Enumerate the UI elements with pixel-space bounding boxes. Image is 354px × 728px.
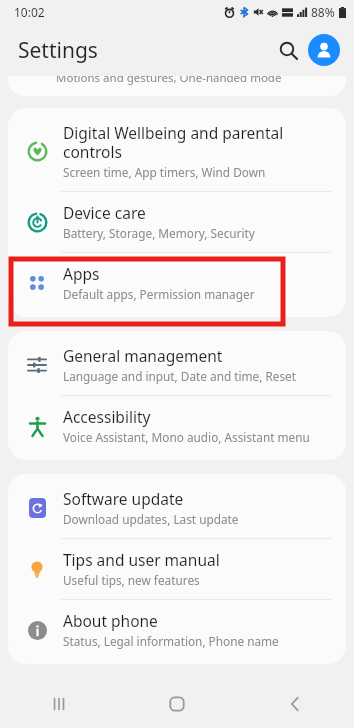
staticText: 10:02 [14,4,45,20]
staticText: Download updates, Last update [63,511,239,527]
button[interactable]: General management [8,335,346,395]
staticText: Accessibility [63,406,151,427]
button[interactable]: Back [236,680,354,728]
staticText: Software update [63,488,184,509]
button[interactable]: Software update [8,478,346,538]
button[interactable]: About phone [8,600,346,660]
button[interactable]: Search [270,32,306,68]
button[interactable]: Accessibility [8,396,346,456]
staticText: Motions and gestures, One-handed mode [56,76,282,86]
button[interactable]: Recents [0,680,118,728]
staticText: Settings [18,36,98,65]
staticText: Tips and user manual [63,549,220,570]
button[interactable]: Digital Wellbeing and parental controls [8,112,346,191]
button[interactable]: Device care [8,192,346,252]
staticText: Digital Wellbeing and parental controls [63,122,332,162]
staticText: Useful tips, new features [63,572,200,588]
staticText: Device care [63,202,146,223]
staticText: Default apps, Permission manager [63,286,255,302]
staticText: Apps [63,263,100,284]
staticText: Language and input, Date and time, Reset [63,368,297,384]
button[interactable]: Apps [8,253,346,313]
staticText: 88% [311,4,335,20]
button[interactable]: Account [308,34,340,66]
staticText: Battery, Storage, Memory, Security [63,225,255,241]
button[interactable]: Tips and user manual [8,539,346,599]
staticText: Screen time, App timers, Wind Down [63,164,266,180]
staticText: Status, Legal information, Phone name [63,633,279,649]
staticText: About phone [63,610,158,631]
staticText: General management [63,345,223,366]
button[interactable]: Home [118,680,236,728]
staticText: Voice Assistant, Mono audio, Assistant m… [63,429,310,445]
